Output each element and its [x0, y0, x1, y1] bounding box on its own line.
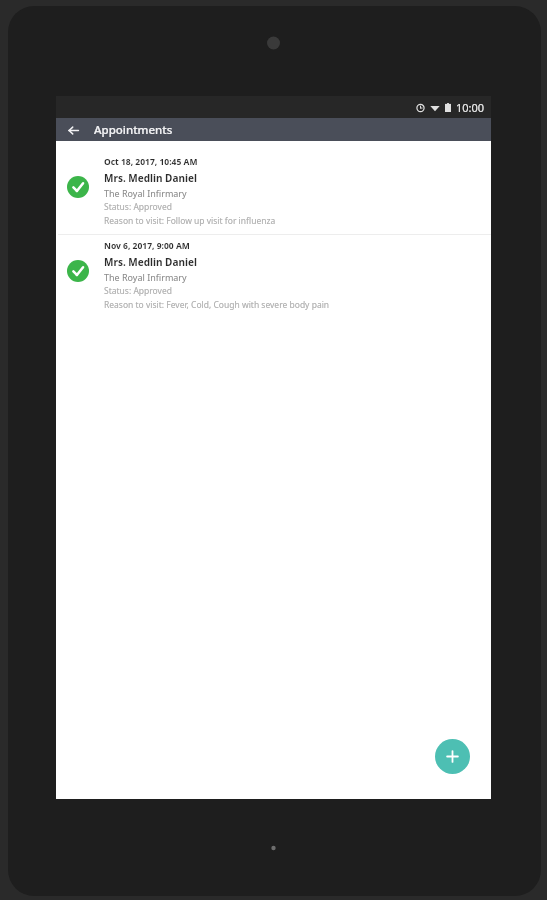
button[interactable]: Back [62, 119, 84, 141]
staticText: Reason to visit: Follow up visit for inf… [104, 215, 276, 227]
button[interactable]: Add appointment [435, 739, 470, 774]
staticText: The Royal Infirmary [104, 271, 187, 283]
staticText: Reason to visit: Fever, Cold, Cough with… [104, 299, 330, 311]
staticText: Status: Approved [104, 285, 172, 297]
staticText: Appointments [94, 122, 173, 138]
staticText: Mrs. Medlin Daniel [104, 255, 197, 269]
staticText: Status: Approved [104, 201, 172, 213]
button[interactable]: Oct 18, 2017, 10:45 AM [56, 151, 491, 234]
staticText: Mrs. Medlin Daniel [104, 171, 197, 185]
staticText: 10:00 [456, 100, 485, 115]
staticText: The Royal Infirmary [104, 187, 187, 199]
button[interactable]: Nov 6, 2017, 9:00 AM [56, 235, 491, 318]
staticText: Nov 6, 2017, 9:00 AM [104, 240, 190, 252]
staticText: Oct 18, 2017, 10:45 AM [104, 156, 198, 168]
